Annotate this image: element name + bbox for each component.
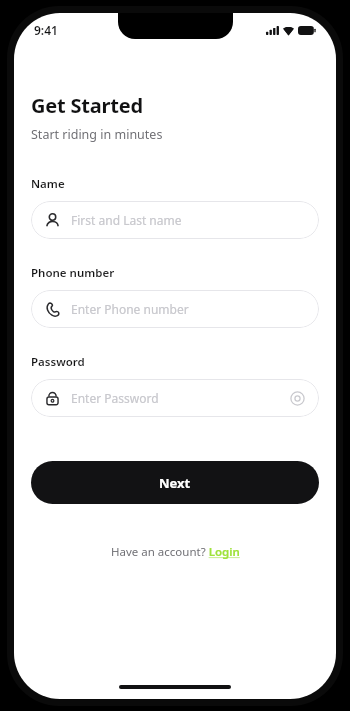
button[interactable]: Enter Phone number	[31, 290, 319, 328]
staticText: Password	[31, 354, 85, 370]
other: Show password	[290, 391, 305, 406]
staticText: Next	[159, 474, 191, 492]
button[interactable]: Have an account? Login	[105, 540, 246, 564]
staticText: Enter Password	[71, 390, 290, 406]
staticText: 9:41	[34, 22, 58, 38]
button[interactable]: First and Last name	[31, 201, 319, 239]
staticText: Enter Phone number	[71, 301, 305, 317]
staticText: First and Last name	[71, 212, 305, 228]
staticText: Phone number	[31, 265, 115, 281]
staticText: Name	[31, 176, 65, 192]
button[interactable]: Next	[31, 461, 319, 504]
staticText: Have an account? Login	[111, 544, 240, 560]
staticText: Start riding in minutes	[31, 126, 163, 143]
button[interactable]: Enter Password	[31, 379, 319, 417]
staticText: Get Started	[31, 92, 143, 119]
